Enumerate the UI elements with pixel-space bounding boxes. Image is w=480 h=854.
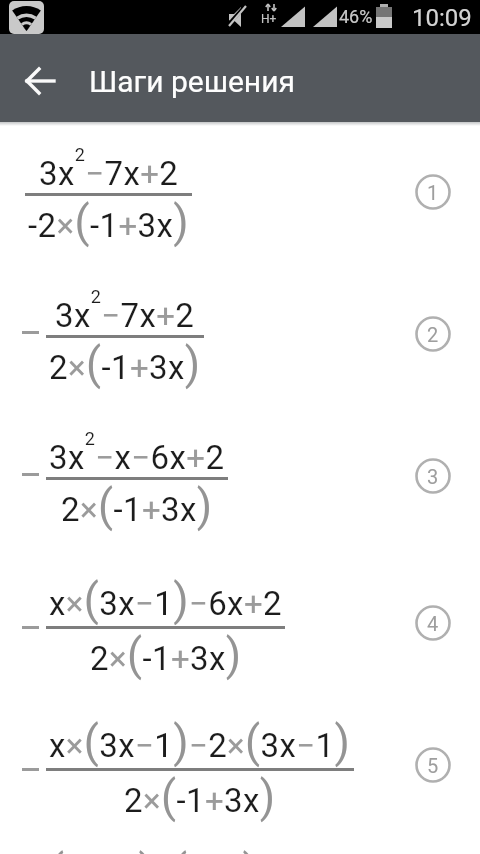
button[interactable]: 3x2−7x+2 xyxy=(0,264,480,406)
button[interactable]: x×(3x−1)−2×(3x−1) xyxy=(0,690,480,832)
button[interactable] xyxy=(26,69,54,93)
staticText: 1 xyxy=(427,181,439,204)
staticText: -2×(-1+3x) xyxy=(28,196,189,248)
button[interactable]: 3x2−7x+2 xyxy=(0,122,480,264)
staticText: 2×(-1+3x) xyxy=(90,629,242,681)
staticText: (3x−1)×(x−2) xyxy=(49,845,259,854)
button[interactable]: x×(3x−1)−6x+2 xyxy=(0,548,480,690)
staticText: H+ xyxy=(261,12,277,26)
staticText: 46% xyxy=(339,6,373,27)
staticText: 3x2−x−6x+2 xyxy=(49,428,225,477)
staticText: 3x2−7x+2 xyxy=(55,286,195,335)
button[interactable]: 3x2−x−6x+2 xyxy=(0,406,480,548)
staticText: 3x2−7x+2 xyxy=(39,144,179,193)
staticText: 2×(-1+3x) xyxy=(124,771,276,823)
staticText: 3 xyxy=(427,465,439,488)
staticText: x×(3x−1)−2×(3x−1) xyxy=(49,716,351,768)
staticText: 2×(-1+3x) xyxy=(61,480,213,532)
staticText: 2×(-1+3x) xyxy=(49,338,201,390)
staticText: 5 xyxy=(427,754,439,777)
staticText: Шаги решения xyxy=(89,64,295,99)
staticText: 4 xyxy=(427,612,439,635)
staticText: 10:09 xyxy=(412,4,472,32)
staticText: 2 xyxy=(427,323,439,346)
staticText: x×(3x−1)−6x+2 xyxy=(49,574,282,626)
